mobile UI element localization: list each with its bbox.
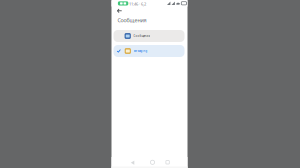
staticText: Messaging: [133, 49, 147, 53]
staticText: Сообщения: [117, 17, 146, 24]
button[interactable]: Messaging: [113, 45, 184, 57]
staticText: Сообщения: [133, 34, 150, 38]
button[interactable]: Recent apps: [166, 161, 169, 164]
button[interactable]: Сообщения: [113, 30, 184, 42]
button[interactable]: Home: [150, 160, 155, 164]
button[interactable]: Back: [130, 160, 135, 165]
button[interactable]: Back: [116, 7, 123, 14]
staticText: 11:46 · 6,2: [129, 1, 146, 7]
